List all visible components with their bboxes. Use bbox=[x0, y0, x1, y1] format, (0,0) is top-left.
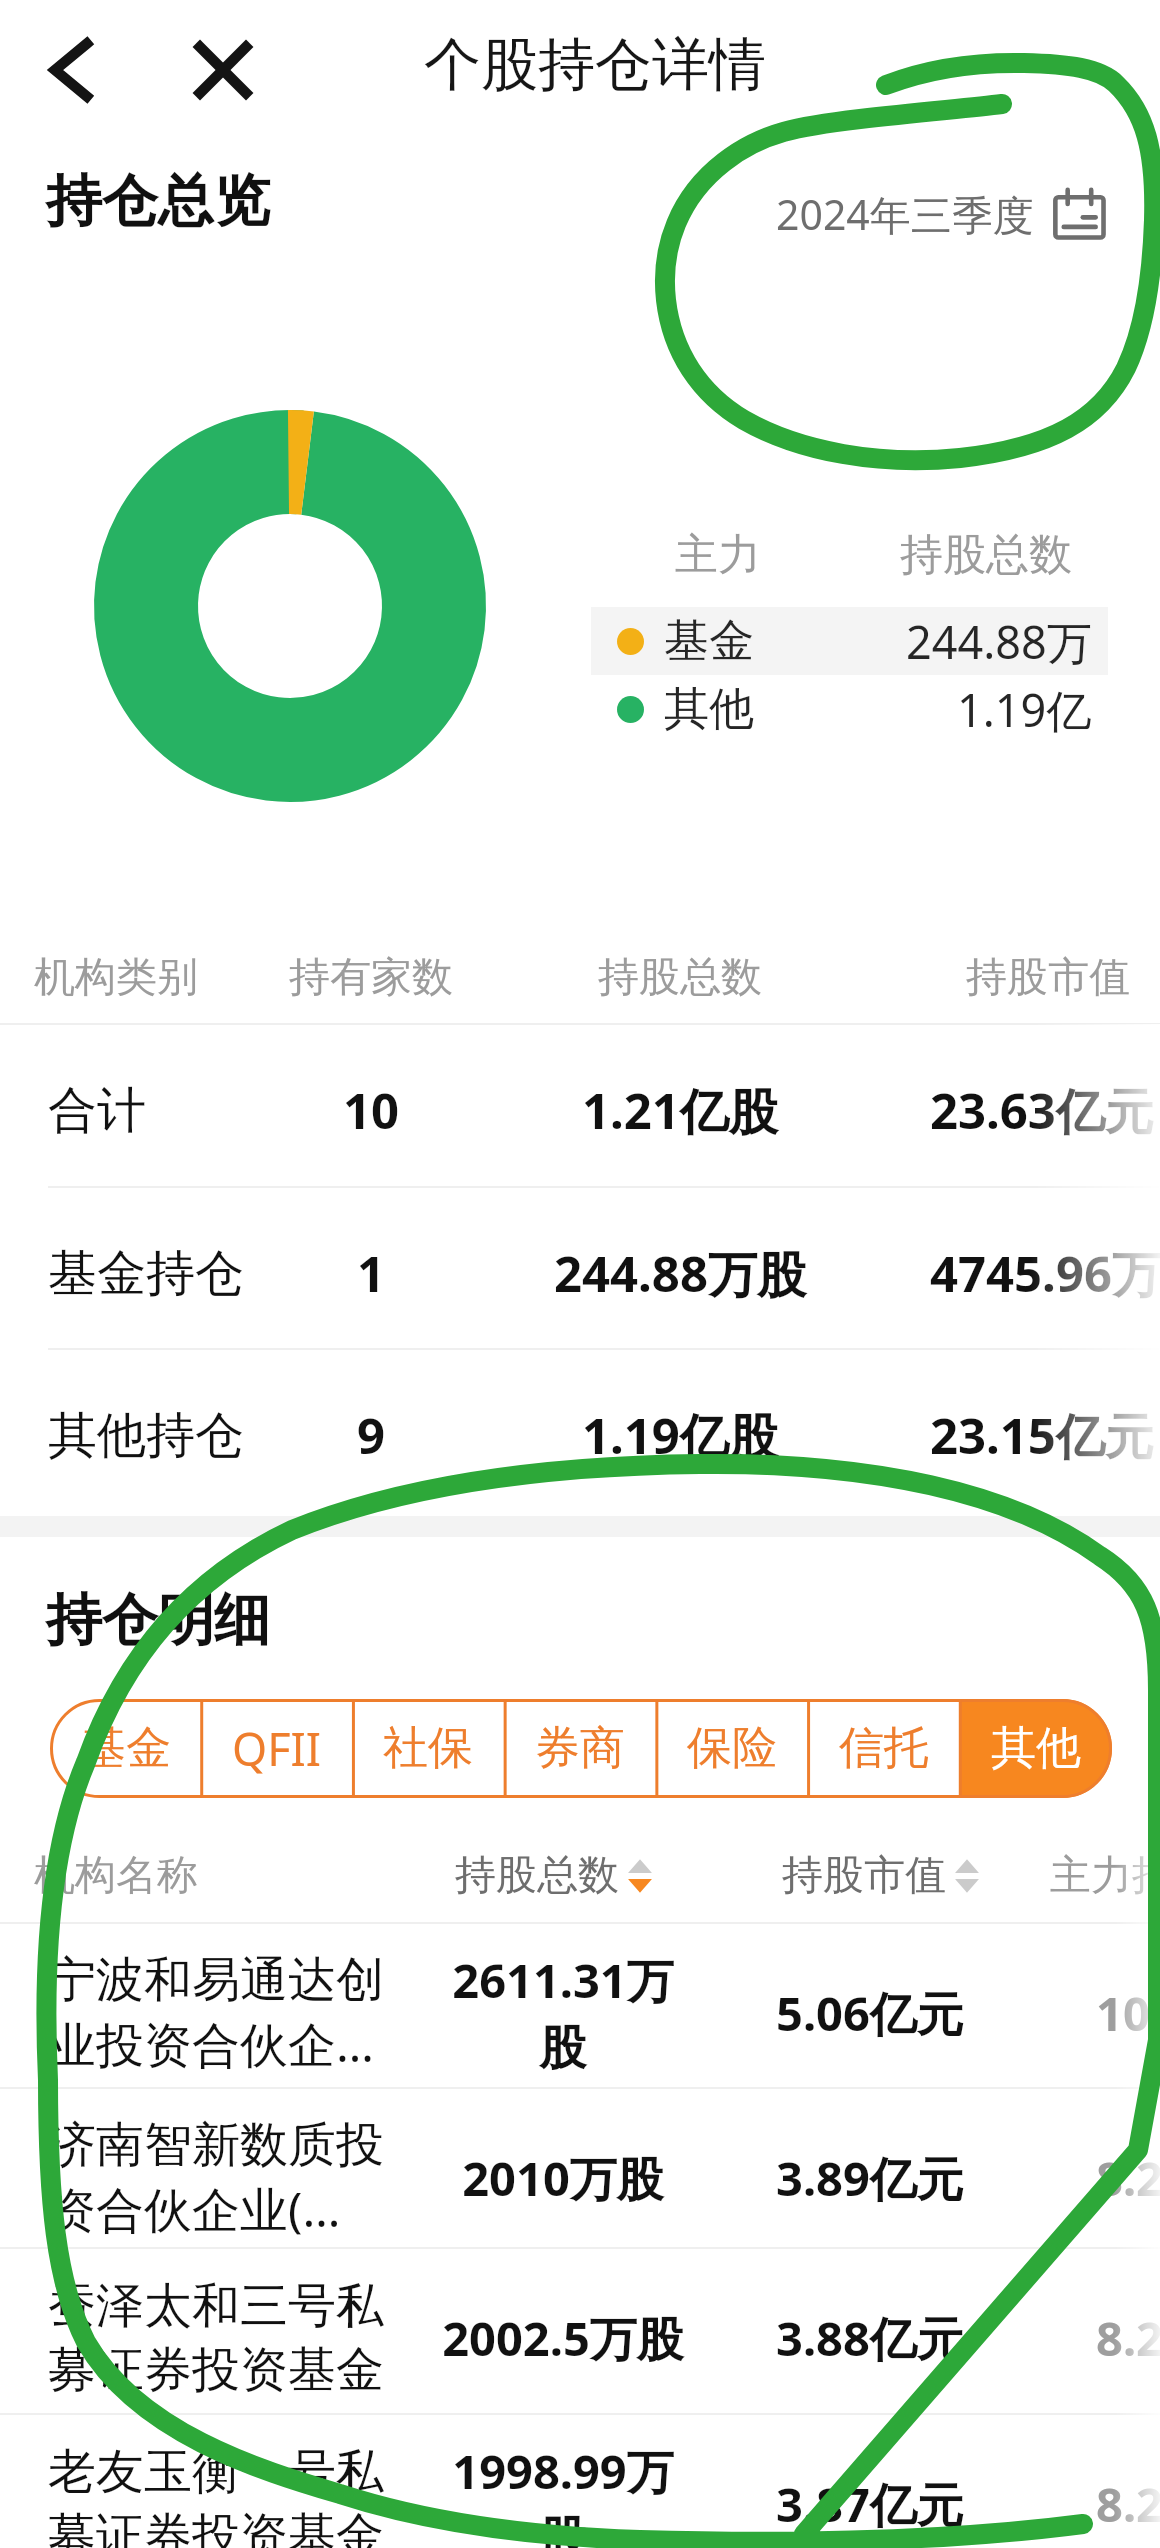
staticText: 23.63亿元 bbox=[930, 1077, 1154, 1144]
button[interactable]: 基金 bbox=[50, 1699, 201, 1798]
button[interactable]: 其他 bbox=[960, 1699, 1112, 1798]
staticText: 3.88亿元 bbox=[776, 2306, 964, 2370]
staticText: 济南智新数质投 资合伙企业(… bbox=[48, 2115, 384, 2241]
button[interactable]: 持股总数 bbox=[455, 1844, 653, 1908]
staticText: 其他 bbox=[664, 681, 754, 738]
button[interactable]: 保险 bbox=[656, 1699, 808, 1798]
staticText: 宁波和易通达创 业投资合伙企… bbox=[48, 1950, 384, 2076]
staticText: 2611.31万 股 bbox=[452, 1948, 674, 2078]
staticText: 持仓总览 bbox=[46, 166, 270, 237]
staticText: 券商 bbox=[535, 1720, 625, 1777]
staticText: 5.06亿元 bbox=[776, 1981, 964, 2045]
button[interactable]: 其他持仓 bbox=[0, 1354, 1160, 1517]
button[interactable]: 老友玉衡一号私 募证券投资基金 bbox=[0, 2422, 1160, 2548]
staticText: 基金持仓 bbox=[48, 1243, 244, 1305]
staticText: 10 bbox=[343, 1077, 400, 1144]
button[interactable]: 合计 bbox=[0, 1029, 1160, 1192]
staticText: 其他持仓 bbox=[48, 1405, 244, 1467]
staticText: 2024年三季度 bbox=[776, 186, 1034, 242]
staticText: 机构类别 bbox=[34, 952, 198, 1004]
staticText: 2010万股 bbox=[462, 2146, 664, 2210]
staticText: 244.88万股 bbox=[554, 1240, 806, 1307]
button[interactable]: 券商 bbox=[504, 1699, 656, 1798]
staticText: 1.19亿 bbox=[957, 679, 1092, 740]
staticText: 4745.96万元 bbox=[930, 1240, 1160, 1307]
button[interactable]: Back bbox=[22, 22, 118, 118]
button[interactable]: QFII bbox=[201, 1699, 352, 1798]
staticText: 持股市值 bbox=[782, 1850, 946, 1902]
staticText: 持有家数 bbox=[289, 952, 453, 1004]
button[interactable]: 宁波和易通达创 业投资合伙企… bbox=[0, 1931, 1160, 2095]
staticText: 1 bbox=[357, 1240, 386, 1307]
staticText: 3.87亿元 bbox=[776, 2472, 964, 2536]
button[interactable]: 2024年三季度 bbox=[776, 182, 1108, 246]
staticText: 8.2 bbox=[1096, 2146, 1160, 2210]
button[interactable]: 基金持仓 bbox=[0, 1192, 1160, 1355]
staticText: 持股总数 bbox=[900, 528, 1072, 582]
staticText: 蚕泽太和三号私 募证券投资基金 bbox=[48, 2276, 384, 2400]
staticText: 个股持仓详情 bbox=[424, 29, 766, 101]
staticText: 23.15亿元 bbox=[930, 1402, 1154, 1469]
staticText: 244.88万 bbox=[906, 611, 1092, 672]
staticText: 主力持 bbox=[1050, 1850, 1160, 1902]
staticText: 1.21亿股 bbox=[582, 1077, 778, 1144]
staticText: 老友玉衡一号私 募证券投资基金 bbox=[48, 2442, 384, 2548]
staticText: 信托 bbox=[839, 1720, 929, 1777]
staticText: 合计 bbox=[48, 1080, 146, 1142]
staticText: 3.89亿元 bbox=[776, 2146, 964, 2210]
staticText: 10 bbox=[1096, 1981, 1150, 2045]
staticText: 持股总数 bbox=[455, 1850, 619, 1902]
staticText: 持股总数 bbox=[598, 952, 762, 1004]
button[interactable]: 基金 bbox=[591, 607, 1108, 675]
button[interactable]: 济南智新数质投 资合伙企业(… bbox=[0, 2096, 1160, 2260]
staticText: 1998.99万 股 bbox=[452, 2439, 674, 2548]
staticText: 社保 bbox=[383, 1720, 473, 1777]
staticText: 机构名称 bbox=[34, 1850, 198, 1902]
staticText: 持仓明细 bbox=[46, 1585, 270, 1656]
staticText: 1.19亿股 bbox=[582, 1402, 778, 1469]
button[interactable]: 信托 bbox=[808, 1699, 960, 1798]
button[interactable]: 社保 bbox=[352, 1699, 504, 1798]
button[interactable]: 持股市值 bbox=[782, 1844, 980, 1908]
staticText: 主力 bbox=[675, 528, 761, 582]
staticText: 基金 bbox=[664, 613, 754, 670]
staticText: 2002.5万股 bbox=[442, 2306, 684, 2370]
staticText: 基金 bbox=[81, 1720, 171, 1777]
staticText: 其他 bbox=[991, 1720, 1081, 1777]
staticText: 持股市值 bbox=[966, 952, 1130, 1004]
button[interactable]: 蚕泽太和三号私 募证券投资基金 bbox=[0, 2256, 1160, 2420]
staticText: 9 bbox=[357, 1402, 386, 1469]
staticText: 保险 bbox=[687, 1720, 777, 1777]
staticText: 8.2 bbox=[1096, 2472, 1160, 2536]
button[interactable]: 其他 bbox=[591, 675, 1108, 743]
staticText: 8.2 bbox=[1096, 2306, 1160, 2370]
staticText: QFII bbox=[232, 1718, 322, 1779]
button[interactable]: Close bbox=[175, 22, 271, 118]
